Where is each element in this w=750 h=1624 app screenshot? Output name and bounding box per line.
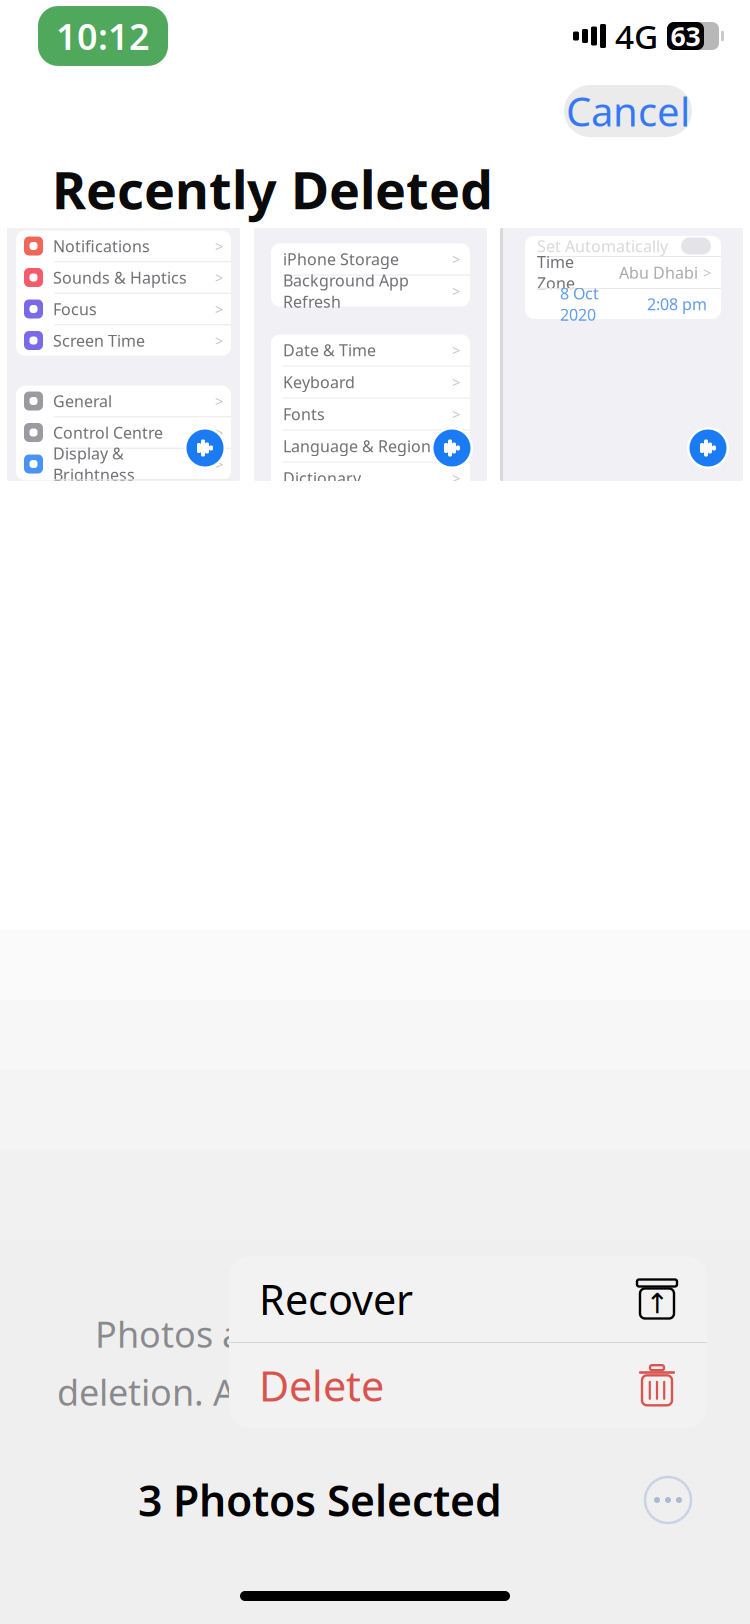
staticText: Screen Time bbox=[53, 330, 145, 351]
staticText: 3 Photos Selected bbox=[138, 1472, 502, 1528]
staticText: Set Automatically bbox=[537, 235, 668, 257]
staticText: ↑ bbox=[645, 1288, 668, 1319]
staticText: > bbox=[215, 454, 223, 474]
staticText: 8 Oct 2020 bbox=[560, 283, 599, 325]
staticText: Control Centre bbox=[53, 422, 163, 443]
staticText: 10:12 bbox=[56, 12, 150, 60]
staticText: Abu Dhabi bbox=[619, 262, 698, 283]
staticText: > bbox=[452, 340, 460, 360]
staticText: deletion. After tha bbox=[57, 1368, 360, 1416]
staticText: Recently Deleted bbox=[52, 154, 493, 224]
staticText: > bbox=[452, 436, 460, 456]
staticText: > bbox=[452, 404, 460, 424]
button[interactable]: More options bbox=[640, 1472, 696, 1528]
staticText: Date & Time bbox=[283, 339, 376, 361]
staticText: > bbox=[215, 331, 223, 350]
staticText: Delete bbox=[259, 1358, 384, 1413]
staticText: 4G bbox=[615, 14, 658, 58]
button[interactable]: Recover bbox=[229, 1256, 707, 1342]
staticText: > bbox=[215, 268, 223, 287]
staticText: Sounds & Haptics bbox=[53, 267, 187, 288]
staticText: > bbox=[452, 249, 460, 269]
staticText: > bbox=[452, 372, 460, 392]
staticText: Background App Refresh bbox=[283, 270, 409, 312]
button[interactable]: Cancel bbox=[564, 85, 692, 137]
staticText: > bbox=[452, 468, 460, 488]
button[interactable]: Delete bbox=[229, 1343, 707, 1428]
staticText: Fonts bbox=[283, 403, 325, 425]
staticText: Notifications bbox=[53, 235, 150, 257]
staticText: 63 bbox=[670, 18, 700, 54]
staticText: Focus bbox=[53, 298, 97, 320]
staticText: 2:08 pm bbox=[647, 293, 707, 315]
staticText: Display & Brightness bbox=[53, 443, 135, 485]
staticText: Keyboard bbox=[283, 371, 355, 393]
staticText: Recover bbox=[259, 1272, 413, 1326]
staticText: > bbox=[215, 299, 223, 319]
staticText: > bbox=[452, 281, 460, 301]
staticText: iPhone Storage bbox=[283, 248, 399, 270]
staticText: > bbox=[703, 263, 711, 282]
staticText: Dictionary bbox=[283, 467, 361, 489]
staticText: Cancel bbox=[566, 84, 690, 137]
staticText: > bbox=[215, 236, 223, 256]
staticText: > bbox=[215, 391, 223, 411]
staticText: Time Zone bbox=[537, 251, 575, 294]
staticText: General bbox=[53, 390, 112, 412]
staticText: Photos and vi bbox=[95, 1310, 322, 1358]
staticText: Language & Region bbox=[283, 435, 431, 457]
staticText: > bbox=[215, 423, 223, 442]
